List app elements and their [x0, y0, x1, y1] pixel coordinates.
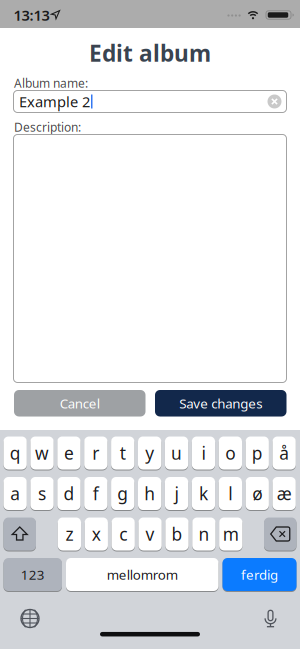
button[interactable]: m: [219, 517, 242, 551]
button[interactable]: Numbers: [3, 557, 62, 591]
button[interactable]: x: [85, 517, 108, 551]
staticText: æ: [277, 482, 292, 505]
staticText: h: [144, 482, 155, 505]
button[interactable]: a: [3, 476, 27, 510]
staticText: q: [10, 441, 21, 464]
staticText: l: [228, 482, 232, 505]
staticText: n: [198, 522, 209, 545]
button[interactable]: Description: [13, 134, 287, 383]
button[interactable]: t: [111, 436, 134, 470]
button[interactable]: r: [84, 436, 107, 470]
button[interactable]: æ: [272, 476, 296, 510]
button[interactable]: Cancel: [14, 390, 145, 416]
button[interactable]: w: [30, 436, 54, 470]
button[interactable]: b: [165, 517, 189, 551]
button[interactable]: Album name: [13, 90, 287, 113]
button[interactable]: g: [111, 476, 134, 510]
button[interactable]: o: [219, 436, 242, 470]
button[interactable]: y: [138, 436, 161, 470]
button[interactable]: ferdig: [222, 557, 296, 591]
staticText: Save changes: [179, 394, 262, 412]
button[interactable]: f: [84, 476, 107, 510]
staticText: d: [63, 482, 74, 505]
staticText: s: [38, 482, 46, 505]
button[interactable]: Shift: [3, 517, 36, 551]
staticText: Album name:: [14, 75, 88, 91]
staticText: mellomrom: [107, 566, 178, 583]
button[interactable]: k: [192, 476, 215, 510]
staticText: a: [10, 482, 20, 505]
staticText: Example 2: [19, 92, 90, 111]
staticText: e: [64, 441, 74, 464]
staticText: Cancel: [60, 394, 100, 412]
button[interactable]: Dictation: [255, 603, 285, 633]
staticText: r: [92, 441, 99, 464]
staticText: ferdig: [241, 566, 278, 583]
button[interactable]: l: [219, 476, 242, 510]
button[interactable]: q: [3, 436, 27, 470]
button[interactable]: Save changes: [155, 390, 286, 416]
staticText: f: [93, 482, 99, 505]
staticText: o: [225, 441, 235, 464]
button[interactable]: mellomrom: [66, 557, 218, 591]
button[interactable]: e: [57, 436, 81, 470]
staticText: å: [279, 441, 289, 464]
staticText: 13:13: [13, 5, 49, 25]
button[interactable]: j: [165, 476, 188, 510]
button[interactable]: p: [246, 436, 269, 470]
staticText: j: [174, 482, 178, 505]
staticText: m: [223, 522, 239, 545]
button[interactable]: u: [165, 436, 188, 470]
staticText: w: [35, 441, 49, 464]
staticText: y: [145, 441, 154, 464]
staticText: g: [117, 482, 128, 505]
button[interactable]: å: [272, 436, 296, 470]
staticText: v: [146, 522, 155, 545]
button[interactable]: ø: [246, 476, 269, 510]
staticText: p: [252, 441, 263, 464]
button[interactable]: c: [111, 517, 135, 551]
button[interactable]: n: [192, 517, 215, 551]
button[interactable]: i: [192, 436, 215, 470]
staticText: Edit album: [89, 38, 211, 68]
button[interactable]: Delete: [264, 517, 296, 551]
button[interactable]: Next keyboard: [15, 603, 45, 633]
button[interactable]: v: [138, 517, 162, 551]
staticText: c: [119, 522, 127, 545]
staticText: t: [120, 441, 126, 464]
staticText: ø: [252, 482, 262, 505]
staticText: 123: [21, 566, 45, 583]
staticText: i: [201, 441, 205, 464]
button[interactable]: d: [57, 476, 81, 510]
staticText: u: [171, 441, 182, 464]
button[interactable]: Clear text: [267, 94, 281, 108]
staticText: Description:: [14, 119, 81, 135]
staticText: x: [92, 522, 101, 545]
button[interactable]: s: [30, 476, 54, 510]
button[interactable]: h: [138, 476, 161, 510]
button[interactable]: z: [58, 517, 81, 551]
staticText: k: [199, 482, 208, 505]
staticText: z: [65, 522, 73, 545]
staticText: b: [171, 522, 182, 545]
